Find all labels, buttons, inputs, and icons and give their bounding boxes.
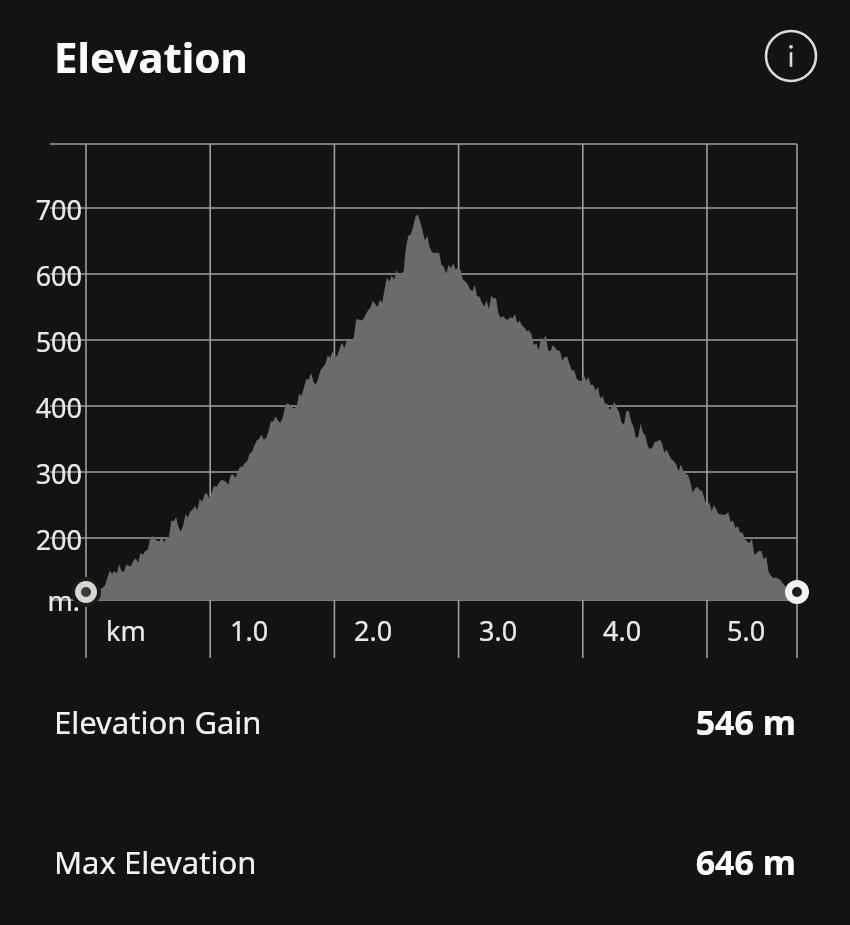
staticText: 1.0 bbox=[230, 612, 269, 649]
staticText: 400 bbox=[35, 389, 82, 426]
staticText: Elevation Gain bbox=[54, 701, 262, 743]
button[interactable]: Max Elevation bbox=[0, 836, 850, 888]
staticText: 3.0 bbox=[479, 612, 518, 649]
staticText: 700 bbox=[35, 191, 82, 228]
staticText: m. bbox=[47, 582, 80, 619]
staticText: 4.0 bbox=[603, 612, 642, 649]
button[interactable]: Elevation Gain bbox=[0, 696, 850, 748]
staticText: km bbox=[106, 612, 146, 649]
staticText: 546 m bbox=[695, 699, 796, 745]
staticText: 646 m bbox=[695, 839, 796, 885]
staticText: 500 bbox=[35, 323, 82, 360]
staticText: 300 bbox=[35, 455, 82, 492]
staticText: Elevation bbox=[54, 28, 248, 85]
staticText: Max Elevation bbox=[54, 841, 257, 883]
staticText: 2.0 bbox=[354, 612, 393, 649]
staticText: 600 bbox=[35, 257, 82, 294]
staticText: 5.0 bbox=[727, 612, 766, 649]
button[interactable]: Info bbox=[760, 25, 822, 87]
staticText: 200 bbox=[35, 521, 82, 558]
